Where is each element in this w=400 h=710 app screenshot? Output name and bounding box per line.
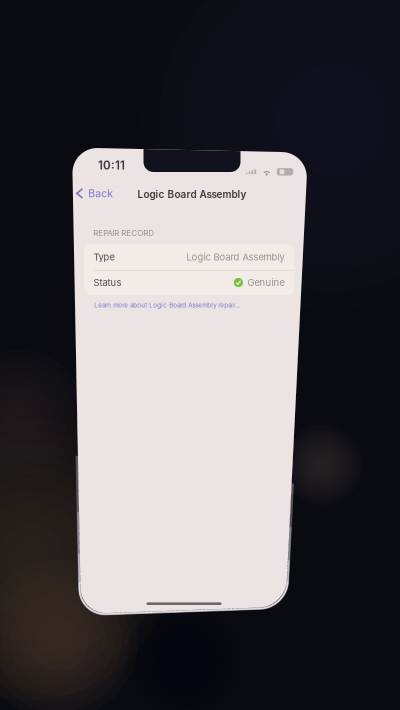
staticText: Logic Board Assembly — [138, 188, 247, 200]
button[interactable]: Learn more about Logic Board Assembly re… — [93, 299, 242, 311]
button[interactable]: Back — [74, 184, 115, 203]
staticText: Genuine — [247, 277, 284, 288]
staticText: Status — [94, 277, 122, 288]
staticText: 10:11 — [98, 158, 125, 172]
staticText: Type — [94, 251, 115, 263]
button[interactable]: Type — [84, 244, 294, 270]
staticText: Learn more about Logic Board Assembly re… — [94, 301, 240, 309]
staticText: Back — [88, 187, 113, 200]
button[interactable]: Status — [84, 270, 294, 295]
staticText: REPAIR RECORD — [93, 228, 154, 238]
staticText: Logic Board Assembly — [186, 251, 284, 263]
